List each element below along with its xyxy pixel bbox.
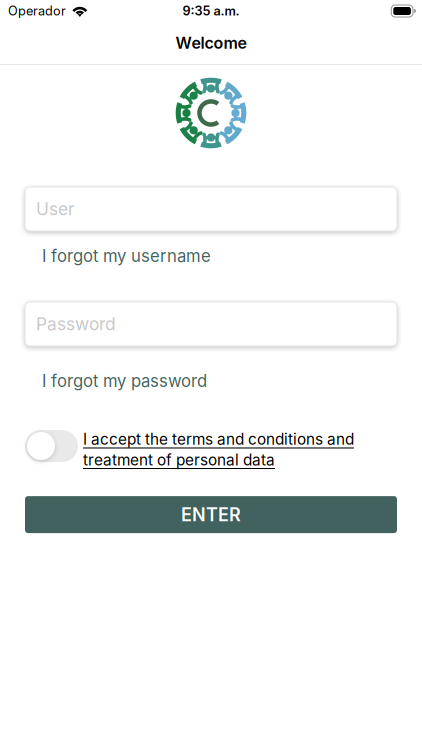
staticText: User	[36, 198, 75, 219]
button[interactable]: ENTER	[25, 496, 397, 533]
staticText: I forgot my password	[42, 371, 207, 391]
staticText: Password	[36, 313, 116, 334]
staticText: 9:35 a.m.	[182, 3, 239, 19]
button[interactable]: I accept the terms and conditions and	[83, 430, 354, 469]
staticText: I accept the terms and conditions and	[83, 430, 354, 449]
staticText: ENTER	[181, 504, 241, 525]
button[interactable]: I forgot my password	[25, 346, 215, 397]
staticText: treatment of personal data	[83, 451, 275, 469]
button[interactable]: Accept terms and conditions	[25, 430, 78, 462]
staticText: Welcome	[175, 33, 246, 53]
staticText: Operador	[8, 3, 66, 19]
button[interactable]: I forgot my username	[25, 231, 219, 272]
staticText: I forgot my username	[42, 246, 211, 266]
